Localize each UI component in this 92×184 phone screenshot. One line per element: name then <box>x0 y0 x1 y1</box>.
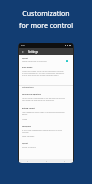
staticText: for more control <box>19 21 73 31</box>
staticText: Customization <box>22 9 70 19</box>
staticText: Let us know if something is not working … <box>22 97 65 101</box>
button[interactable]: Back <box>19 48 73 55</box>
staticText: About <box>22 142 28 145</box>
staticText: Agree <box>22 118 27 120</box>
staticText: Terms of service <box>22 146 36 148</box>
staticText: Notifications <box>22 86 34 88</box>
staticText: Send message <box>22 135 35 137</box>
staticText: 9:41 <box>21 44 26 47</box>
staticText: About <box>22 57 28 60</box>
staticText: Your feedback really helps us make the a… <box>22 111 65 115</box>
staticText: When the screen turns off the app keeps … <box>22 70 65 76</box>
other: Back <box>21 50 25 54</box>
staticText: Sound and vibration <box>22 93 41 96</box>
staticText: Feedback <box>22 125 31 128</box>
staticText: Rating collect <box>22 107 35 110</box>
staticText: Settings <box>28 50 39 54</box>
staticText: If you have suggestions please write to … <box>22 129 65 133</box>
staticText: Dark mode <box>22 66 33 69</box>
button[interactable] <box>19 57 73 64</box>
staticText: Shown when app is launched <box>22 60 47 62</box>
